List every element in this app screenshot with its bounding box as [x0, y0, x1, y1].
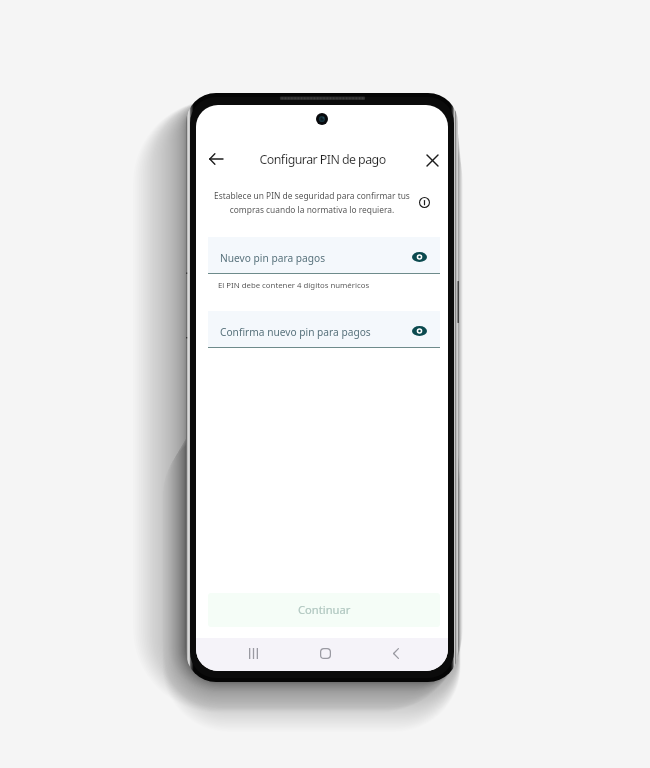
button[interactable]: Continuar — [208, 593, 440, 627]
staticText: Continuar — [298, 602, 351, 617]
staticText: Nuevo pin para pagos — [220, 251, 326, 265]
button[interactable]: Show PIN — [407, 245, 431, 269]
button[interactable] — [208, 237, 440, 273]
staticText: Confirma nuevo pin para pagos — [220, 325, 371, 339]
staticText: Configurar PIN de pago — [259, 151, 386, 168]
staticText: Establece un PIN de seguridad para confi… — [211, 190, 413, 215]
button[interactable] — [208, 311, 440, 347]
button[interactable]: Show PIN — [407, 319, 431, 343]
staticText: El PIN debe contener 4 dígitos numéricos — [218, 280, 370, 291]
button[interactable]: More information — [413, 191, 435, 213]
button[interactable]: Recents — [236, 636, 270, 670]
button[interactable]: Back — [379, 636, 413, 670]
button[interactable]: Back — [200, 143, 232, 175]
button[interactable]: Home — [308, 636, 342, 670]
button[interactable]: Close — [417, 145, 447, 175]
